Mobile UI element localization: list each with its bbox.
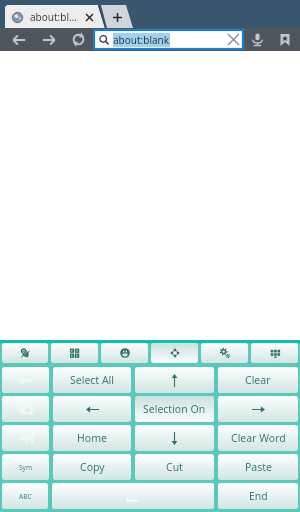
button[interactable]: Tab	[2, 425, 49, 451]
button[interactable]: Forward	[34, 28, 63, 51]
button[interactable]: Cut	[135, 454, 214, 480]
button[interactable]: Keypad	[251, 343, 298, 363]
button[interactable]: Attach	[2, 343, 48, 363]
button[interactable]: End	[218, 483, 298, 509]
button[interactable]: New tab	[110, 10, 124, 24]
button[interactable]: Down	[135, 425, 214, 451]
button[interactable]: Paste	[218, 454, 298, 480]
button[interactable]: Reload	[64, 28, 93, 51]
button[interactable]: Enter	[2, 367, 49, 393]
button[interactable]: Emoji	[101, 343, 148, 363]
button[interactable]: Space	[52, 483, 214, 509]
button[interactable]: Clear	[218, 367, 298, 393]
button[interactable]: Settings	[201, 343, 248, 363]
button[interactable]: Right	[218, 396, 298, 422]
staticText: End	[249, 489, 268, 503]
button[interactable]: Back	[4, 28, 34, 51]
button[interactable]: Selection On	[135, 396, 214, 422]
button[interactable]: Clear	[224, 30, 243, 49]
staticText: ABC	[19, 492, 32, 501]
staticText: Sym	[19, 463, 32, 472]
staticText: about:blank	[113, 33, 170, 47]
staticText: Clear Word	[231, 431, 286, 445]
staticText: Cut	[166, 460, 183, 474]
button[interactable]: Sym	[2, 454, 49, 480]
staticText: Home	[77, 431, 107, 445]
button[interactable]: Bookmark	[272, 28, 298, 51]
staticText: Select All	[70, 373, 115, 387]
button[interactable]: Left	[53, 396, 131, 422]
staticText: Clear	[245, 373, 271, 387]
button[interactable]: Copy	[53, 454, 131, 480]
staticText: Selection On	[143, 402, 206, 416]
button[interactable]: Up	[135, 367, 214, 393]
button[interactable]: Backspace	[2, 396, 49, 422]
staticText: Copy	[80, 460, 105, 474]
button[interactable]: Move cursor	[151, 343, 198, 363]
button[interactable]: Select All	[53, 367, 131, 393]
button[interactable]: about:blank	[94, 30, 243, 49]
button[interactable]: Clear Word	[218, 425, 298, 451]
button[interactable]: Voice search	[245, 28, 269, 51]
button[interactable]: ABC	[2, 483, 48, 509]
button[interactable]: Close tab	[83, 11, 96, 24]
staticText: about:bl…	[30, 10, 77, 24]
staticText: Paste	[245, 460, 272, 474]
button[interactable]: Shortcuts	[51, 343, 98, 363]
button[interactable]: Home	[53, 425, 131, 451]
